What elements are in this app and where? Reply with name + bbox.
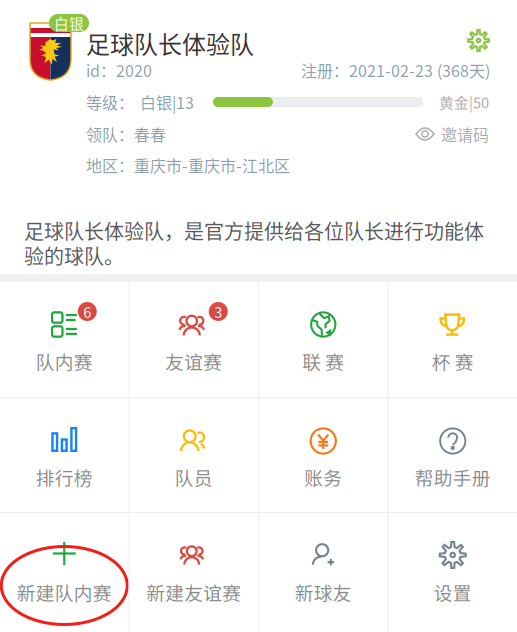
button[interactable]: 新建队内赛 xyxy=(0,513,128,632)
staticText: 地区：重庆市-重庆市-江北区 xyxy=(86,153,290,177)
button[interactable]: 新建友谊赛 xyxy=(129,513,258,632)
button[interactable]: 队员 xyxy=(129,398,258,512)
staticText: 排行榜 xyxy=(36,463,93,490)
staticText: 等级： xyxy=(86,90,134,114)
staticText: 新建队内赛 xyxy=(17,578,112,605)
staticText: id：2020 xyxy=(86,58,152,82)
staticText: 队员 xyxy=(175,463,213,490)
button[interactable]: 3 xyxy=(129,282,258,397)
button[interactable]: 新球友 xyxy=(259,513,387,632)
button[interactable]: 邀请码 xyxy=(416,123,489,145)
staticText: 帮助手册 xyxy=(415,463,491,490)
staticText: 注册：2021-02-23 (368天) xyxy=(301,58,490,82)
button[interactable]: 帮助手册 xyxy=(388,398,517,512)
button[interactable]: 账务 xyxy=(259,398,387,512)
staticText: 6 xyxy=(83,301,91,322)
button[interactable]: 6 xyxy=(0,282,128,397)
staticText: 白银|13 xyxy=(140,90,194,114)
staticText: 账务 xyxy=(304,463,342,490)
staticText: 领队：春春 xyxy=(86,122,166,146)
staticText: 3 xyxy=(214,301,222,322)
button[interactable]: 排行榜 xyxy=(0,398,128,512)
button[interactable]: 杯 赛 xyxy=(388,282,517,397)
staticText: 黄金|50 xyxy=(439,91,489,113)
staticText: 白银 xyxy=(54,12,84,34)
staticText: 杯 赛 xyxy=(432,347,474,374)
staticText: 联 赛 xyxy=(302,347,344,374)
staticText: 足球队长体验队 xyxy=(86,26,254,60)
staticText: 邀请码 xyxy=(441,122,489,146)
staticText: 友谊赛 xyxy=(165,347,222,374)
staticText: 新球友 xyxy=(295,578,352,605)
staticText: 设置 xyxy=(434,578,472,605)
staticText: 队内赛 xyxy=(36,347,93,374)
button[interactable]: 联 赛 xyxy=(259,282,387,397)
staticText: 足球队长体验队，是官方提供给各位队长进行功能体验的球队。 xyxy=(24,216,484,270)
staticText: 新建友谊赛 xyxy=(146,578,241,605)
button[interactable]: 设置 xyxy=(388,513,517,632)
button[interactable]: Settings xyxy=(458,20,499,61)
